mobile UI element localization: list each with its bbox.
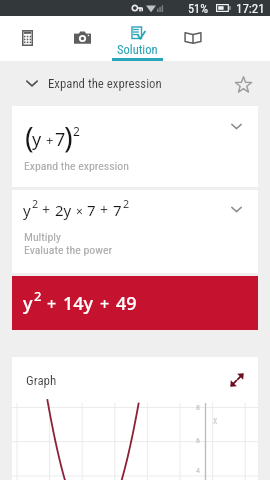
staticText: Evaluate the power — [24, 243, 113, 257]
staticText: 7 — [87, 200, 96, 220]
button[interactable]: Calculator — [0, 16, 55, 61]
staticText: 17:21 — [236, 1, 265, 16]
staticText: + — [46, 131, 54, 149]
staticText: Multiply — [24, 230, 61, 244]
staticText: 8 — [196, 403, 200, 412]
button[interactable]: y — [12, 276, 258, 330]
staticText: 7 — [55, 127, 66, 152]
staticText: Graph — [26, 373, 57, 388]
staticText: 2y — [55, 200, 72, 220]
staticText: 4 — [196, 466, 200, 475]
staticText: 2 — [32, 196, 39, 211]
staticText: ( — [25, 117, 34, 156]
button[interactable]: Expand graph — [224, 367, 250, 393]
staticText: 49 — [116, 291, 137, 316]
staticText: y — [23, 200, 31, 220]
staticText: y — [23, 291, 33, 316]
button[interactable]: Camera — [55, 16, 110, 61]
staticText: 2 — [123, 196, 130, 211]
button[interactable]: ( — [12, 106, 258, 187]
staticText: 6 — [196, 436, 200, 445]
staticText: 7 — [113, 200, 122, 220]
staticText: + — [47, 293, 57, 315]
staticText: Expand the expression — [48, 76, 162, 91]
button[interactable]: Add to favorites — [226, 67, 260, 101]
button[interactable]: Solution — [110, 16, 165, 61]
staticText: Expand the expression — [24, 159, 129, 173]
staticText: × — [76, 203, 83, 219]
button[interactable]: y — [12, 190, 258, 273]
staticText: ) — [64, 117, 73, 156]
staticText: + — [100, 200, 109, 219]
staticText: + — [42, 200, 51, 219]
staticText: 14y — [63, 291, 94, 316]
staticText: y — [32, 127, 42, 152]
staticText: 2 — [34, 287, 42, 305]
staticText: Solution — [117, 42, 158, 57]
staticText: 2 — [73, 123, 80, 139]
staticText: + — [100, 293, 110, 315]
staticText: 51% — [188, 2, 208, 16]
button[interactable]: Expand the expression — [0, 61, 270, 106]
staticText: x — [213, 415, 218, 427]
button[interactable]: Book — [165, 16, 220, 61]
